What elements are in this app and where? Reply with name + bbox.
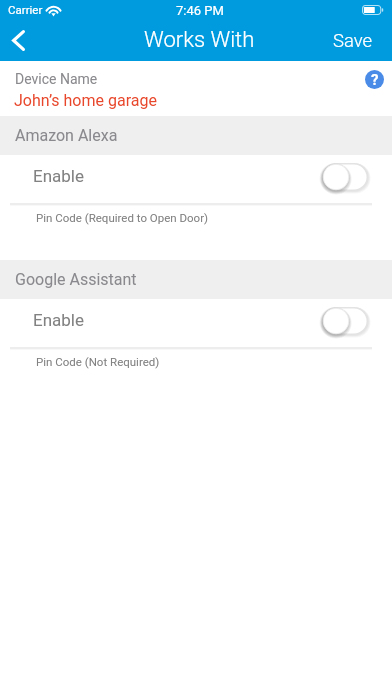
staticText: Google Assistant	[15, 270, 137, 289]
button[interactable]: Save	[0, 22, 392, 61]
staticText: Works With	[144, 27, 255, 53]
button[interactable]: Enable toggle	[322, 307, 368, 335]
staticText: Device Name	[15, 71, 98, 87]
staticText: Enable	[33, 166, 84, 186]
button[interactable]: Enable	[0, 155, 392, 203]
button[interactable]: Back	[0, 22, 44, 61]
staticText: ?	[371, 71, 379, 89]
staticText: Pin Code (Not Required)	[36, 355, 160, 368]
staticText: John’s home garage	[14, 91, 157, 110]
staticText: Save	[333, 30, 373, 52]
staticText: Carrier	[8, 3, 43, 16]
button[interactable]: Device Name	[0, 61, 392, 116]
button[interactable]: Enable toggle	[322, 163, 368, 191]
button[interactable]: Help	[365, 70, 384, 89]
staticText: Amazon Alexa	[15, 126, 118, 145]
button[interactable]: Enable	[0, 299, 392, 347]
staticText: Pin Code (Required to Open Door)	[36, 211, 209, 224]
button[interactable]: Pin Code (Required to Open Door)	[0, 209, 392, 239]
staticText: 7:46 PM	[176, 3, 224, 18]
staticText: Enable	[33, 310, 84, 330]
button[interactable]: Pin Code (Not Required)	[0, 353, 392, 383]
